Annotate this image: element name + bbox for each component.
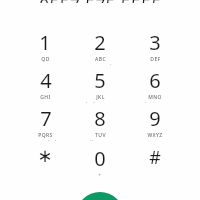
staticText: TUV	[95, 132, 106, 139]
staticText: ص ض ط ظ	[85, 101, 115, 103]
button[interactable]: Dial #	[128, 145, 182, 181]
staticText: #	[149, 145, 161, 170]
staticText: MNO	[148, 94, 162, 101]
staticText: 0557 575 5555	[39, 0, 162, 3]
staticText: +	[98, 172, 102, 179]
staticText: 7	[40, 105, 52, 132]
staticText: 1	[39, 29, 51, 56]
staticText: 0	[94, 145, 106, 172]
button[interactable]: Call	[76, 192, 124, 200]
staticText: 5	[94, 67, 106, 94]
staticText: ه و ي لا	[90, 139, 110, 141]
staticText: 2	[94, 29, 106, 56]
staticText: 9	[149, 105, 161, 132]
staticText: PQRS	[38, 132, 53, 139]
staticText: 4	[40, 67, 52, 94]
staticText: DEF	[150, 56, 161, 63]
button[interactable]: Dial 7	[18, 105, 72, 141]
button[interactable]: 0557 575 5555	[0, 0, 200, 10]
staticText: WXYZ	[147, 132, 163, 139]
staticText: ك ل م ن	[34, 139, 57, 141]
button[interactable]: Dial 4	[18, 67, 72, 103]
staticText: ABC	[95, 56, 106, 63]
button[interactable]: Dial 6	[128, 67, 182, 103]
staticText: JKL	[96, 94, 105, 101]
button[interactable]: Dial 9	[128, 105, 182, 141]
staticText: ع غ ف ق	[143, 101, 167, 103]
button[interactable]: Dial 8	[73, 105, 127, 141]
staticText: 6	[149, 67, 161, 94]
staticText: GHI	[40, 94, 51, 101]
staticText: ا ب ت ث	[88, 63, 112, 65]
staticText: QD	[41, 56, 50, 63]
button[interactable]: Dial 5	[73, 67, 127, 103]
button[interactable]: Dial 3	[128, 29, 182, 65]
staticText: 8	[94, 105, 106, 132]
button[interactable]: Dial ∗	[18, 145, 72, 181]
staticText: 3	[149, 29, 161, 56]
button[interactable]: Dial 0	[73, 145, 127, 181]
button[interactable]: Dial 1	[18, 29, 72, 65]
button[interactable]: Dial 2	[73, 29, 127, 65]
staticText: ∗	[37, 145, 53, 166]
